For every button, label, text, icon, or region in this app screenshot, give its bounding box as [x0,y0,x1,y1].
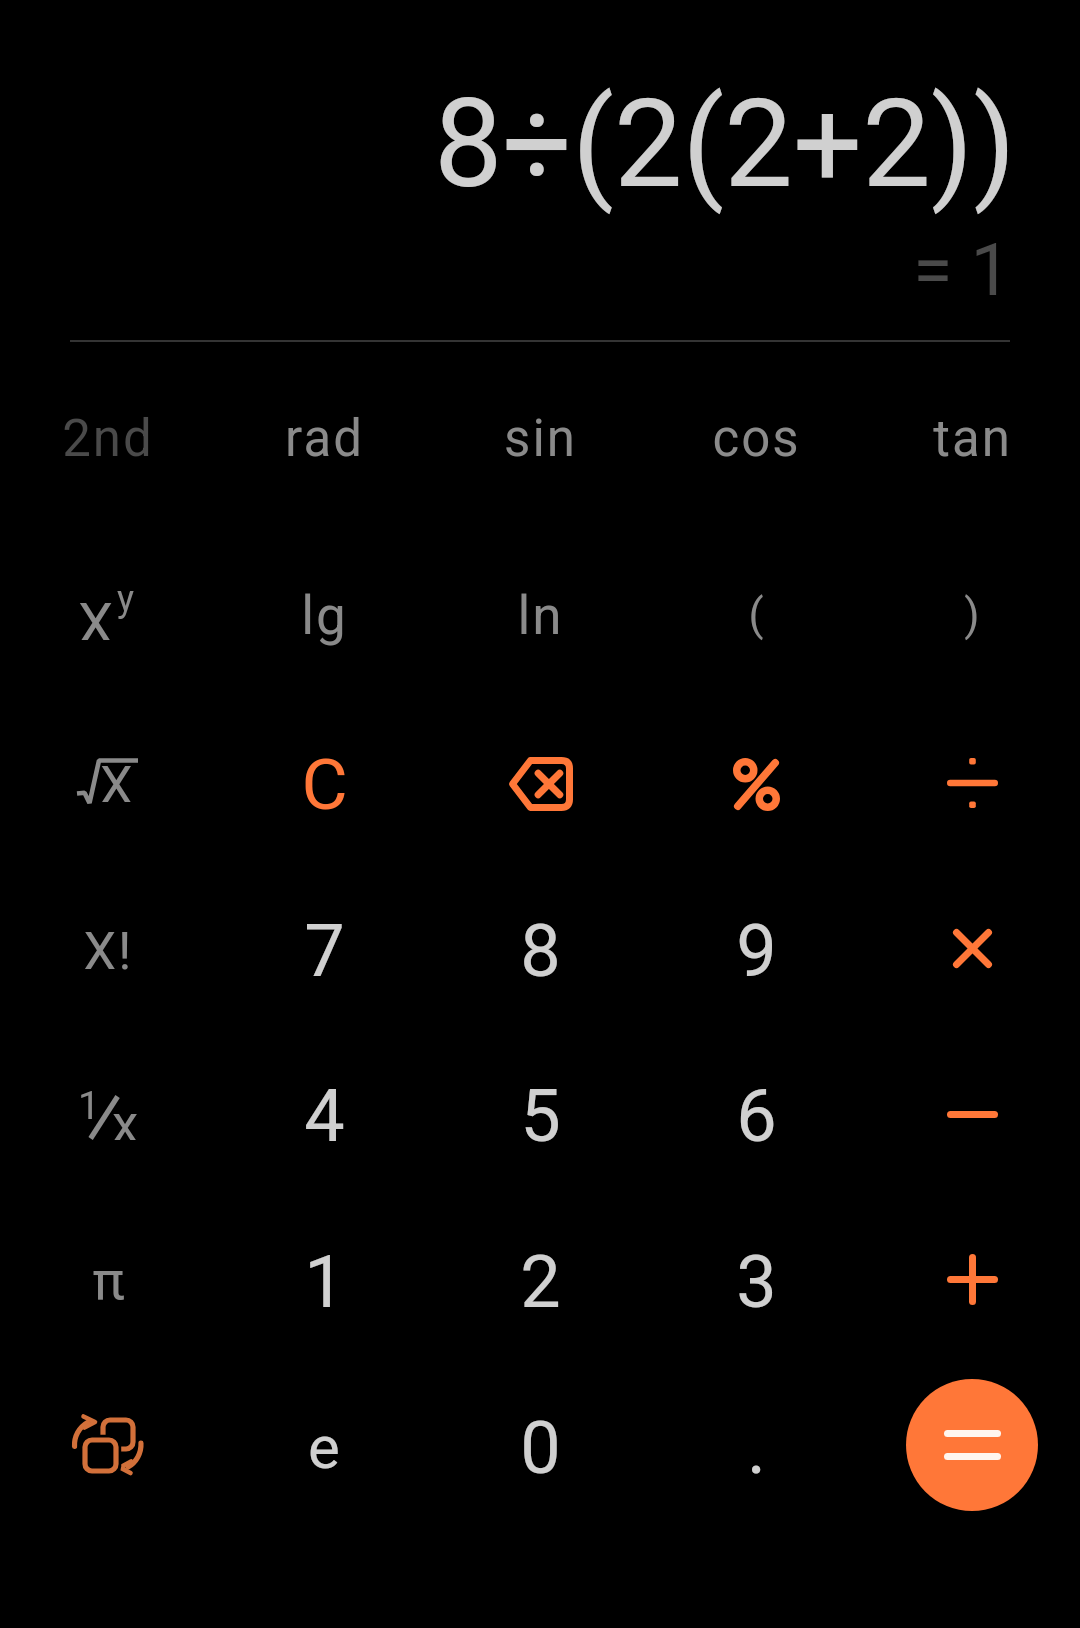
staticText: cos [712,409,801,469]
button[interactable]: e [216,1372,432,1522]
button[interactable]: Plus [864,1204,1080,1354]
staticText: 5 [520,1074,561,1158]
staticText: ln [517,585,564,647]
button[interactable]: Unit converter [0,1373,216,1523]
button[interactable]: cos [648,364,864,514]
button[interactable]: ) [864,540,1080,690]
button[interactable]: . [648,1373,864,1523]
staticText: = 1 [913,228,1011,312]
staticText: 2 [520,1240,561,1324]
button[interactable]: Equals [906,1379,1038,1511]
button[interactable]: 3 [648,1207,864,1357]
staticText: X [100,755,133,802]
button[interactable]: ln [432,541,648,691]
button[interactable]: X [0,709,216,859]
staticText: 8÷(2(2+2)) [434,73,1016,216]
button[interactable]: Divide [864,708,1080,858]
staticText: 2nd [62,409,154,469]
button[interactable]: 2nd [0,364,216,514]
staticText: π [92,1249,125,1312]
staticText: 8 [520,909,561,993]
button[interactable]: 7 [216,876,432,1026]
button[interactable]: lg [216,541,432,691]
staticText: e [308,1412,340,1482]
button[interactable]: C [216,709,432,859]
button[interactable]: Minus [864,1039,1080,1189]
button[interactable]: Backspace [432,709,648,859]
staticText: 3 [736,1240,777,1324]
staticText: x [112,1093,139,1140]
button[interactable]: 0 [432,1373,648,1523]
button[interactable]: ( [648,540,864,690]
staticText: 0 [520,1406,561,1490]
staticText: ) [964,589,980,641]
staticText: 4 [304,1074,345,1158]
button[interactable]: π [0,1205,216,1355]
staticText: X [78,591,114,640]
button[interactable]: rad [216,364,432,514]
staticText: lg [301,585,348,647]
button[interactable]: 9 [648,876,864,1026]
staticText: tan [933,409,1012,469]
button[interactable]: Percent [648,709,864,859]
staticText: 7 [304,909,345,993]
staticText: rad [285,409,364,469]
button[interactable]: X [0,541,216,691]
button[interactable]: 6 [648,1041,864,1191]
button[interactable]: tan [864,364,1080,514]
button[interactable]: 1 [216,1207,432,1357]
staticText: ( [748,589,764,641]
staticText: C [301,743,348,826]
staticText: 1 [304,1240,345,1324]
staticText: . [747,1406,766,1490]
button[interactable]: sin [432,364,648,514]
button[interactable]: 4 [216,1041,432,1191]
staticText: 6 [736,1074,777,1158]
button[interactable]: X! [0,876,216,1026]
staticText: sin [504,409,577,469]
button[interactable]: 5 [432,1041,648,1191]
button[interactable]: 8 [432,876,648,1026]
staticText: y [117,578,135,620]
button[interactable]: 2 [432,1207,648,1357]
button[interactable]: 1 [0,1041,216,1191]
staticText: 1 [78,1083,100,1129]
staticText: X! [83,921,134,982]
button[interactable]: Multiply [864,873,1080,1023]
staticText: 9 [736,909,777,993]
